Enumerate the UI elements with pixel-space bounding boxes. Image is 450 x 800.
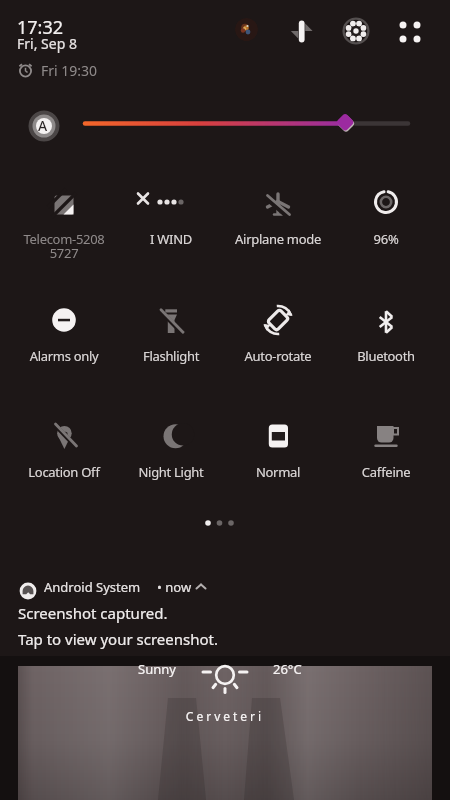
staticText: Fri 19:30 bbox=[41, 61, 98, 80]
staticText: Normal bbox=[222, 463, 334, 481]
staticText: Flashlight bbox=[115, 347, 227, 365]
button[interactable] bbox=[342, 17, 370, 45]
button[interactable] bbox=[396, 18, 424, 46]
staticText: 96% bbox=[330, 230, 442, 248]
button[interactable] bbox=[336, 185, 436, 275]
button[interactable] bbox=[336, 300, 436, 390]
button[interactable] bbox=[288, 17, 316, 45]
button[interactable] bbox=[228, 415, 328, 505]
staticText: 5727 bbox=[8, 244, 120, 262]
staticText: Sunny bbox=[138, 660, 176, 678]
button[interactable] bbox=[228, 185, 328, 275]
staticText: Android System bbox=[44, 578, 141, 596]
button[interactable] bbox=[14, 415, 114, 505]
staticText: Telecom-5208 bbox=[8, 230, 120, 248]
button[interactable] bbox=[336, 415, 436, 505]
staticText: Fri, Sep 8 bbox=[17, 34, 77, 53]
button[interactable] bbox=[121, 415, 221, 505]
staticText: • now bbox=[157, 578, 192, 596]
button[interactable] bbox=[14, 58, 124, 82]
button[interactable] bbox=[228, 300, 328, 390]
staticText: Caffeine bbox=[330, 463, 442, 481]
button[interactable] bbox=[80, 108, 415, 140]
button[interactable] bbox=[14, 300, 114, 390]
staticText: Night Light bbox=[115, 463, 227, 481]
staticText: 26°C bbox=[273, 660, 302, 678]
staticText: Alarms only bbox=[8, 347, 120, 365]
button[interactable] bbox=[14, 185, 114, 275]
button[interactable] bbox=[121, 185, 221, 275]
button[interactable] bbox=[235, 18, 258, 41]
staticText: 17:32 bbox=[17, 15, 64, 40]
button[interactable]: Sunny bbox=[18, 666, 432, 800]
staticText: Location Off bbox=[8, 463, 120, 481]
staticText: Screenshot captured. bbox=[18, 603, 168, 623]
staticText: Cerveteri bbox=[18, 708, 432, 724]
staticText: A bbox=[38, 116, 48, 135]
staticText: Bluetooth bbox=[330, 347, 442, 365]
staticText: Auto-rotate bbox=[222, 347, 334, 365]
button[interactable] bbox=[121, 300, 221, 390]
button[interactable] bbox=[0, 570, 450, 658]
staticText: Tap to view your screenshot. bbox=[18, 629, 218, 649]
button[interactable] bbox=[28, 110, 60, 142]
staticText: Airplane mode bbox=[222, 230, 334, 248]
staticText: I WIND bbox=[115, 230, 227, 248]
